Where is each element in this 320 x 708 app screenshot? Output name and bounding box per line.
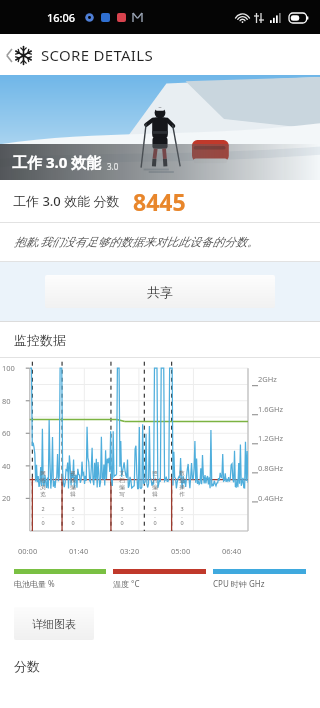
staticText: CPU 时钟 GHz: [213, 578, 265, 589]
staticText: 3: [71, 505, 75, 512]
staticText: [72, 498, 74, 505]
staticText: .: [121, 512, 123, 519]
staticText: 操: [179, 484, 185, 491]
staticText: 工作 3.0 效能 分数: [13, 192, 120, 210]
staticText: 1.2GHz: [258, 433, 284, 443]
staticText: 03:20: [120, 546, 140, 556]
staticText: [42, 498, 44, 505]
staticText: 01:40: [69, 546, 89, 556]
staticText: 0.4GHz: [258, 493, 284, 503]
button[interactable]: Back: [4, 45, 155, 65]
staticText: 0: [180, 519, 184, 526]
staticText: [121, 498, 123, 505]
staticText: 文: [119, 470, 125, 477]
staticText: 电池电量 %: [14, 578, 55, 589]
staticText: 频: [70, 477, 76, 484]
staticText: 工作 3.0 效能: [12, 152, 102, 172]
button[interactable]: 共享: [45, 275, 275, 308]
staticText: 分数: [14, 658, 40, 674]
button[interactable]: 工作 3.0 效能 分数: [0, 180, 320, 222]
staticText: 60: [2, 428, 11, 438]
staticText: 3: [120, 505, 124, 512]
staticText: 详细图表: [32, 617, 76, 631]
button[interactable]: 详细图表: [14, 607, 94, 640]
staticText: 辑: [70, 491, 76, 498]
staticText: 视: [70, 470, 76, 477]
staticText: 2GHz: [258, 374, 277, 384]
staticText: .: [42, 512, 44, 519]
staticText: 览: [40, 491, 46, 498]
staticText: .: [154, 512, 156, 519]
staticText: 监控数据: [14, 332, 66, 348]
staticText: 2: [41, 505, 45, 512]
staticText: 编: [70, 484, 76, 491]
staticText: 8445: [133, 186, 186, 217]
staticText: 数: [179, 470, 185, 477]
staticText: 温度 °C: [113, 578, 140, 589]
staticText: 20: [2, 493, 11, 503]
staticText: 作: [179, 491, 185, 498]
staticText: 0.8GHz: [258, 463, 284, 473]
staticText: 片: [152, 477, 158, 484]
staticText: 0: [71, 519, 75, 526]
staticText: 共享: [147, 284, 173, 300]
staticText: 据: [179, 477, 185, 484]
staticText: 网: [40, 470, 46, 477]
staticText: 100: [2, 363, 15, 373]
staticText: 40: [2, 461, 11, 471]
staticText: 1.6GHz: [258, 404, 284, 414]
staticText: 0: [41, 519, 45, 526]
staticText: 浏: [40, 484, 46, 491]
staticText: [154, 498, 156, 505]
staticText: 编: [119, 484, 125, 491]
staticText: 16:06: [47, 10, 76, 25]
staticText: 档: [119, 477, 125, 484]
staticText: [181, 498, 183, 505]
staticText: 3: [153, 505, 157, 512]
staticText: .: [72, 512, 74, 519]
staticText: 00:00: [18, 546, 38, 556]
staticText: 06:40: [222, 546, 242, 556]
staticText: 络: [40, 477, 46, 484]
staticText: 辑: [152, 491, 158, 498]
staticText: 3: [180, 505, 184, 512]
staticText: 0: [153, 519, 157, 526]
staticText: 80: [2, 396, 11, 406]
staticText: 0: [120, 519, 124, 526]
staticText: .: [181, 512, 183, 519]
staticText: 照: [152, 470, 158, 477]
staticText: 写: [119, 491, 125, 498]
staticText: 3.0: [107, 161, 119, 172]
staticText: SCORE DETAILS: [41, 45, 153, 65]
staticText: 编: [152, 484, 158, 491]
staticText: 抱歉,我们没有足够的数据来对比此设备的分数。: [14, 234, 259, 250]
staticText: 05:00: [171, 546, 191, 556]
